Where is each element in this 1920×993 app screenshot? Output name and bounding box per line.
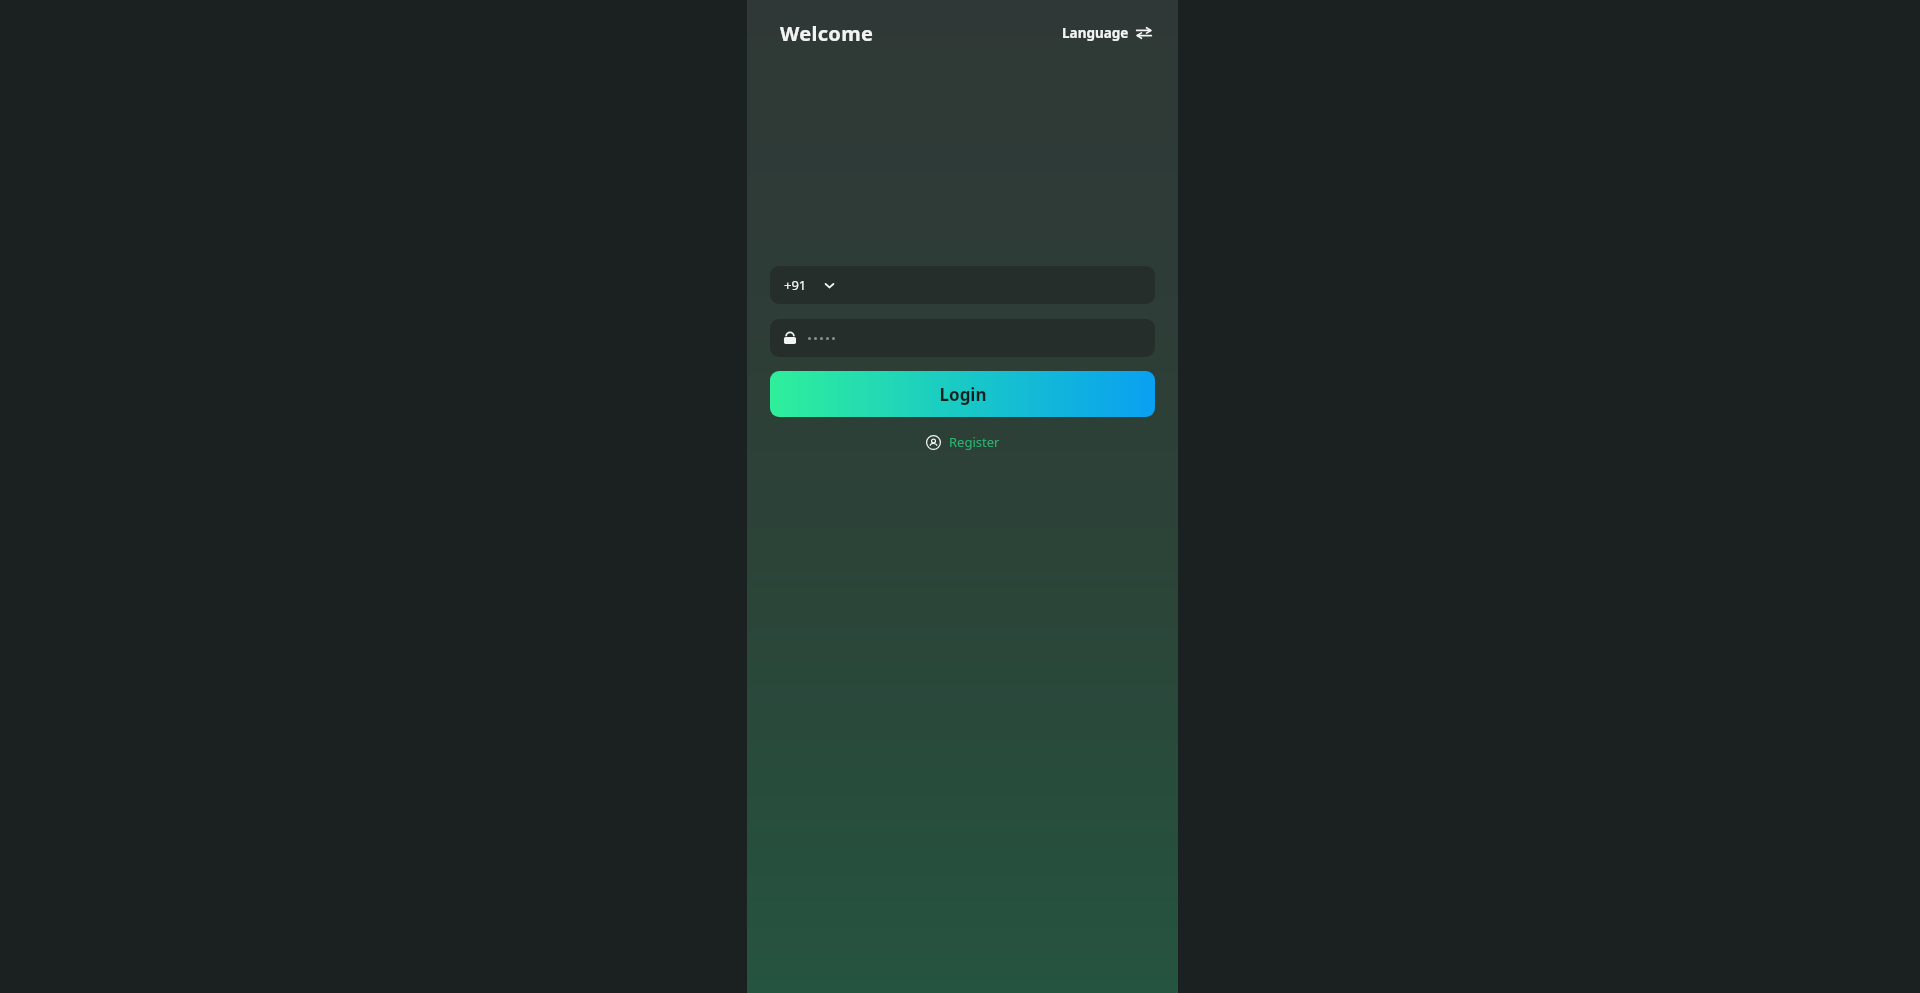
staticText: Language — [1062, 24, 1129, 42]
button[interactable]: Register — [920, 428, 1006, 456]
button[interactable] — [770, 319, 1155, 357]
staticText: +91 — [784, 276, 807, 294]
staticText: Login — [939, 383, 987, 406]
button[interactable]: Language — [1058, 18, 1156, 48]
staticText: Welcome — [780, 20, 874, 47]
other: Change language — [1136, 25, 1152, 41]
button[interactable]: +91 — [770, 266, 1155, 304]
button[interactable]: Login — [770, 371, 1155, 417]
staticText: Register — [949, 433, 1000, 451]
